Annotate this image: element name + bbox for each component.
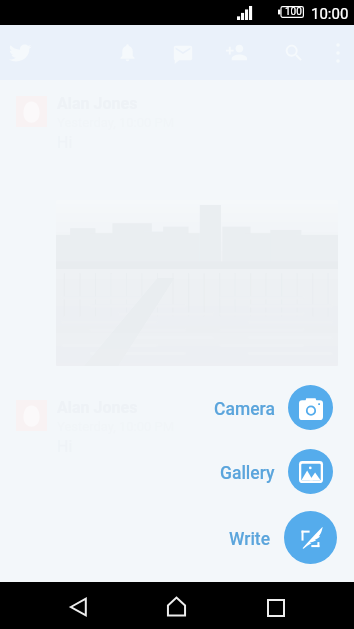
button[interactable]: Recents xyxy=(245,582,306,629)
button[interactable]: Gallery xyxy=(220,449,333,494)
staticText: Write xyxy=(229,529,271,550)
staticText: 100 xyxy=(285,6,302,18)
button[interactable]: Write xyxy=(229,511,337,564)
button[interactable]: Messages xyxy=(163,25,203,80)
staticText: 10:00 xyxy=(311,5,349,23)
staticText: Camera xyxy=(214,399,275,420)
button[interactable]: Home xyxy=(146,582,207,629)
button[interactable]: Back xyxy=(48,582,109,629)
button[interactable]: Twitter home xyxy=(0,25,40,80)
button[interactable]: Camera xyxy=(214,385,333,430)
staticText: Gallery xyxy=(220,463,275,484)
